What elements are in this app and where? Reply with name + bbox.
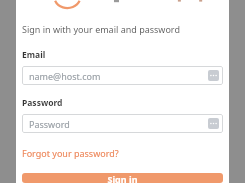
button[interactable]: Show suggestions — [208, 70, 219, 81]
button[interactable]: Show suggestions — [208, 118, 219, 129]
button[interactable]: Password — [22, 114, 223, 133]
button[interactable]: Forgot your password? — [22, 146, 119, 160]
staticText: Password — [22, 97, 63, 109]
staticText: Sign in with your email and password — [22, 23, 180, 35]
staticText: Email — [22, 49, 46, 61]
staticText: Sign in — [107, 173, 138, 183]
staticText: Forgot your password? — [22, 147, 119, 159]
button[interactable]: name@host.com — [22, 66, 223, 85]
button[interactable]: Sign in — [22, 173, 223, 183]
staticText: Password — [29, 118, 70, 130]
staticText: name@host.com — [29, 70, 101, 82]
